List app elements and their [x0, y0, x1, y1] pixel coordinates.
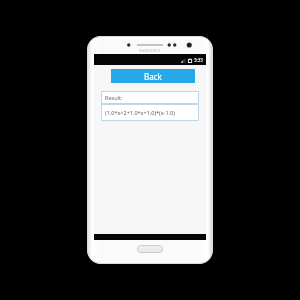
staticText: (1.0*x^2+1.0*x+1.0)*(x-1.0) — [105, 109, 175, 116]
staticText: 3:33 — [194, 57, 203, 63]
button[interactable]: Home — [137, 245, 163, 253]
staticText: Result: — [105, 94, 123, 101]
staticText: Back — [144, 71, 162, 82]
staticText: SAMSUNG — [139, 48, 161, 53]
button[interactable]: Back — [111, 69, 195, 83]
